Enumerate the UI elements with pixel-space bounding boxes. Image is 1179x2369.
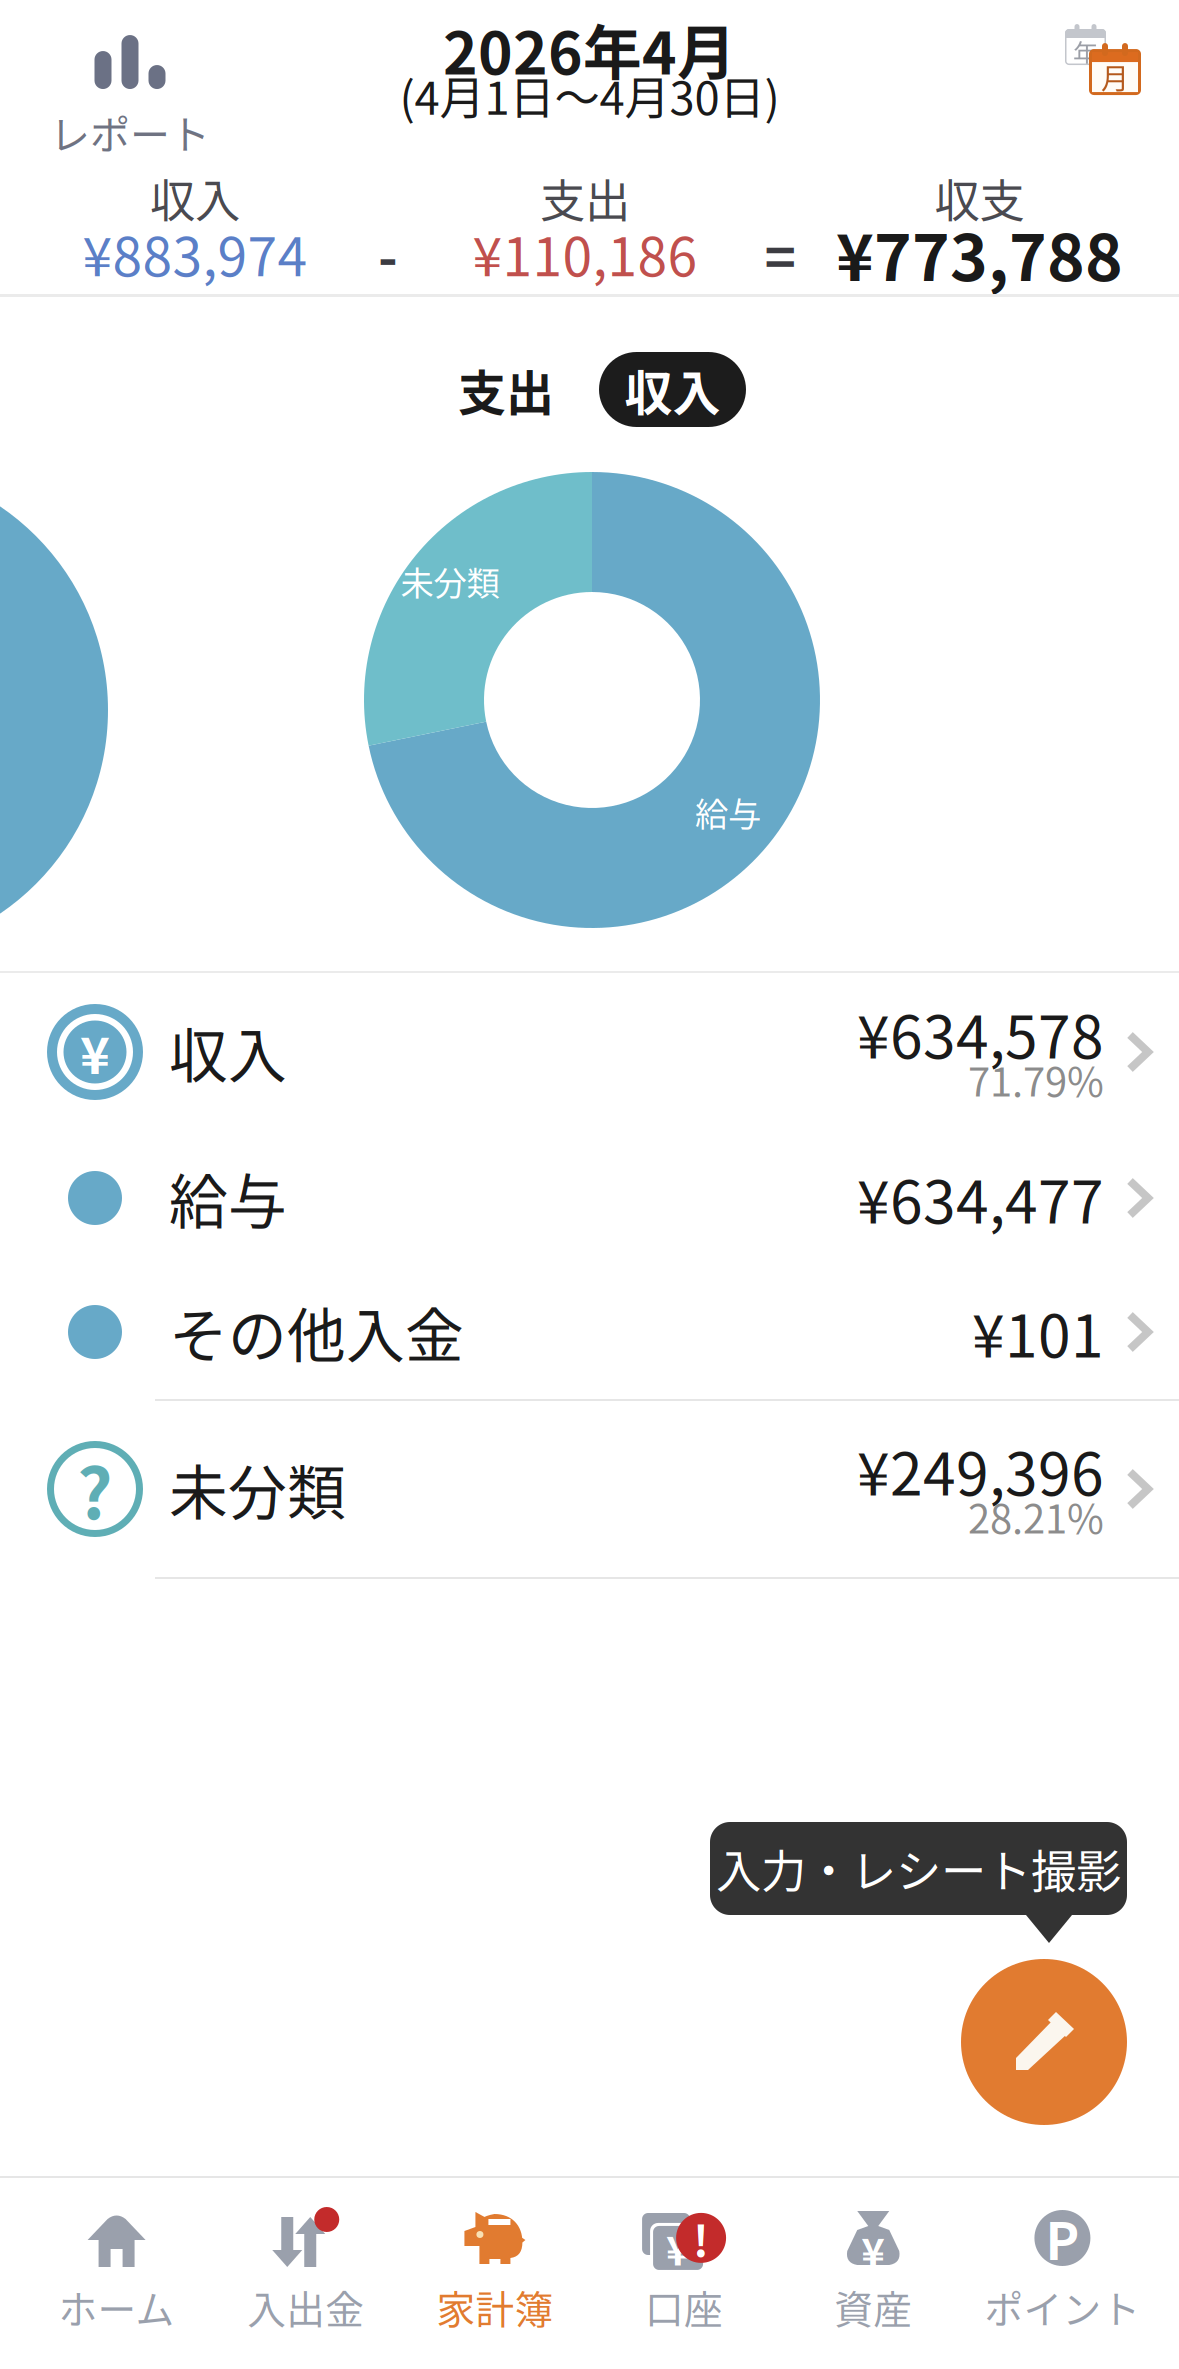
staticText: 年 (1073, 33, 1098, 70)
staticText: (4月1日〜4月30日) (399, 62, 779, 128)
staticText: 給与 (169, 1155, 287, 1240)
staticText: ¥249,396 (857, 1427, 1104, 1512)
staticText: 28.21% (968, 1487, 1104, 1545)
staticText: 71.79% (968, 1050, 1104, 1108)
staticText: - (378, 215, 398, 293)
staticText: ! (693, 2207, 709, 2269)
button[interactable]: 入力・レシート撮影 (961, 1959, 1127, 2125)
staticText: ¥ (666, 2219, 690, 2277)
staticText: ¥110,186 (472, 214, 697, 292)
staticText: 未分類 (400, 557, 499, 605)
staticText: ¥773,788 (836, 207, 1123, 299)
staticText: 支出 (540, 165, 630, 231)
button[interactable]: 入出金 (211, 2178, 400, 2369)
staticText: 収支 (934, 165, 1024, 231)
staticText: 入出金 (247, 2279, 364, 2335)
button[interactable]: その他入金 (0, 1265, 1179, 1399)
button[interactable]: ¥ (589, 2178, 779, 2369)
staticText: 収入 (169, 1009, 287, 1094)
staticText: ¥ (861, 2221, 885, 2279)
staticText: 家計簿 (436, 2279, 553, 2335)
staticText: P (1045, 2201, 1079, 2275)
staticText: 未分類 (169, 1446, 346, 1531)
button[interactable]: P (968, 2178, 1157, 2369)
staticText: ホーム (59, 2279, 175, 2335)
button[interactable]: 収入 (599, 352, 746, 427)
staticText: 2026年4月 (443, 7, 736, 92)
button[interactable]: 家計簿 (400, 2178, 589, 2369)
staticText: 収入 (624, 355, 720, 424)
staticText: ¥634,578 (857, 990, 1104, 1075)
staticText: 月 (1101, 57, 1129, 97)
button[interactable]: 支出 (452, 352, 560, 427)
staticText: ¥634,477 (857, 1155, 1104, 1240)
staticText: ¥ (80, 1015, 110, 1089)
staticText: 支出 (458, 355, 554, 424)
button[interactable]: ¥ (779, 2178, 968, 2369)
button[interactable]: レポート (0, 0, 230, 171)
button[interactable]: ホーム (22, 2178, 211, 2369)
staticText: ポイント (984, 2279, 1140, 2335)
button[interactable]: ? (0, 1401, 1179, 1577)
staticText: 入力・レシート撮影 (716, 1836, 1121, 1901)
button[interactable]: ¥ (0, 973, 1179, 1131)
button[interactable]: 年月切替 (1065, 0, 1179, 101)
staticText: 収入 (150, 165, 240, 231)
staticText: ¥101 (972, 1289, 1104, 1374)
staticText: 資産 (834, 2279, 912, 2335)
staticText: レポート (50, 103, 210, 161)
staticText: = (764, 215, 795, 293)
staticText: その他入金 (169, 1289, 464, 1374)
staticText: ¥883,974 (82, 214, 307, 292)
staticText: 口座 (645, 2279, 723, 2335)
staticText: 給与 (695, 788, 761, 836)
staticText: ? (77, 1439, 113, 1539)
button[interactable]: 給与 (0, 1131, 1179, 1265)
